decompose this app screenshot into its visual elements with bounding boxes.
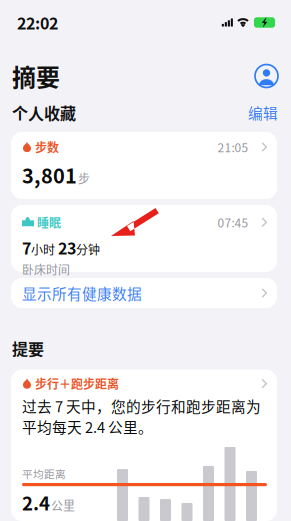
- staticText: 摘要: [12, 59, 60, 93]
- staticText: 22:02: [17, 11, 58, 34]
- staticText: 显示所有健康数据: [22, 283, 142, 303]
- staticText: 小时: [31, 241, 58, 258]
- staticText: 07:45: [217, 214, 248, 231]
- staticText: 卧床时间: [22, 261, 70, 278]
- button[interactable]: 步行＋跑步距离: [11, 370, 277, 521]
- staticText: 3,801: [22, 161, 77, 189]
- staticText: 睡眠: [37, 214, 61, 231]
- staticText: 平均距离: [22, 466, 66, 481]
- button[interactable]: 步数: [11, 132, 277, 199]
- staticText: 23: [58, 236, 76, 259]
- staticText: 公里: [51, 497, 75, 514]
- button[interactable]: 个人资料: [255, 64, 278, 87]
- staticText: 个人收藏: [12, 101, 76, 124]
- button[interactable]: 显示所有健康数据: [11, 278, 277, 308]
- staticText: 编辑: [248, 102, 278, 123]
- staticText: 提要: [12, 337, 44, 360]
- staticText: 步数: [35, 138, 59, 155]
- staticText: 7: [22, 236, 31, 259]
- button[interactable]: 编辑: [248, 102, 278, 123]
- staticText: 过去 7 天中，您的步行和跑步距离为平均每天 2.4 公里。: [22, 396, 261, 437]
- button[interactable]: 睡眠: [11, 205, 277, 272]
- staticText: 分钟: [76, 241, 100, 258]
- staticText: 步行＋跑步距离: [35, 375, 119, 392]
- staticText: 21:05: [217, 138, 248, 155]
- staticText: 步: [78, 170, 90, 187]
- staticText: 2.4: [22, 489, 50, 515]
